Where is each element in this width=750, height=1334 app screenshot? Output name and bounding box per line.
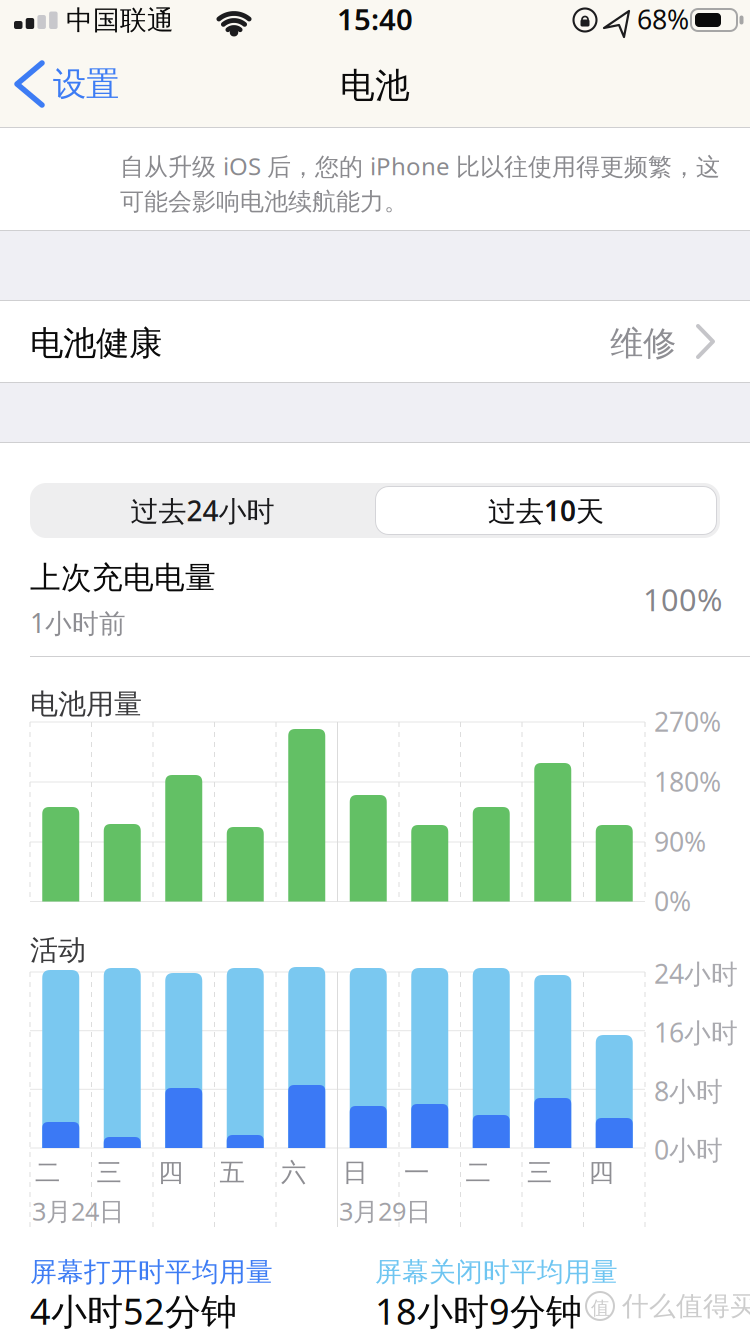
staticText: 三: [96, 1157, 121, 1188]
staticText: 过去24小时: [130, 492, 274, 529]
staticText: 4小时52分钟: [30, 1287, 237, 1334]
staticText: 1小时前: [30, 605, 126, 640]
staticText: 二: [465, 1157, 490, 1188]
staticText: 上次充电电量: [30, 559, 216, 597]
staticText: 18小时9分钟: [375, 1287, 582, 1334]
staticText: 68%: [637, 1, 689, 37]
staticText: 电池: [340, 64, 410, 107]
staticText: 日: [342, 1157, 367, 1188]
staticText: 设置: [53, 64, 119, 105]
staticText: 3月29日: [339, 1194, 431, 1228]
staticText: 什么值得买: [622, 1290, 750, 1323]
staticText: 可能会影响电池续航能力。: [120, 187, 408, 216]
staticText: 活动: [30, 933, 86, 967]
staticText: 15:40: [337, 0, 413, 38]
staticText: 270%: [654, 704, 721, 739]
button[interactable]: 电池健康: [0, 301, 750, 382]
staticText: 过去10天: [488, 492, 604, 529]
staticText: 中国联通: [66, 4, 174, 37]
staticText: 电池健康: [30, 323, 162, 364]
staticText: 维修: [610, 323, 676, 364]
staticText: 五: [219, 1157, 244, 1188]
staticText: 屏幕打开时平均用量: [30, 1256, 273, 1289]
button[interactable]: 过去24小时: [30, 483, 375, 538]
button[interactable]: 设置: [0, 40, 150, 128]
staticText: 四: [588, 1157, 613, 1188]
staticText: 电池用量: [30, 687, 142, 721]
staticText: 屏幕关闭时平均用量: [375, 1256, 618, 1289]
staticText: 六: [281, 1157, 306, 1188]
staticText: 8小时: [654, 1073, 723, 1108]
staticText: 0小时: [654, 1132, 723, 1167]
staticText: 四: [158, 1157, 183, 1188]
staticText: 16小时: [654, 1014, 738, 1050]
staticText: 180%: [654, 764, 721, 799]
staticText: 90%: [654, 824, 706, 859]
staticText: 三: [527, 1157, 552, 1188]
staticText: 值: [591, 1296, 610, 1319]
staticText: 0%: [654, 883, 691, 919]
staticText: 一: [404, 1157, 429, 1188]
button[interactable]: 过去10天: [375, 486, 716, 534]
staticText: 二: [35, 1157, 60, 1188]
staticText: 24小时: [654, 956, 738, 991]
staticText: 100%: [643, 579, 722, 620]
staticText: 自从升级 iOS 后，您的 iPhone 比以往使用得更频繁，这: [120, 150, 720, 182]
staticText: 3月24日: [32, 1194, 124, 1228]
